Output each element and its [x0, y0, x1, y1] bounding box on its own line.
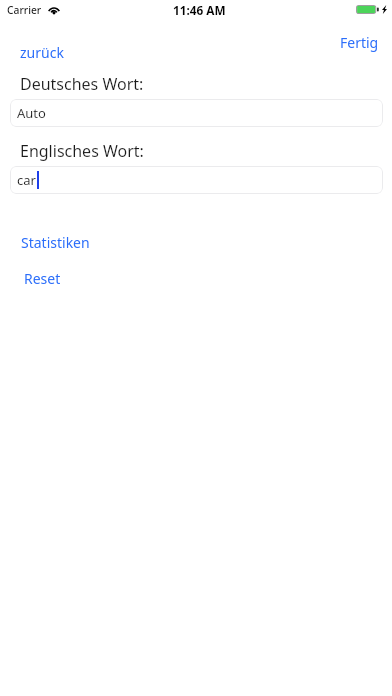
staticText: Statistiken — [21, 233, 90, 252]
other: Battery charging — [356, 5, 379, 14]
button[interactable]: Fertig — [328, 28, 391, 57]
button[interactable]: Reset — [12, 264, 73, 293]
button[interactable]: zurück — [8, 38, 76, 67]
staticText: Auto — [17, 104, 46, 122]
staticText: Reset — [24, 269, 61, 288]
button[interactable]: Statistiken — [9, 228, 102, 257]
staticText: car — [17, 171, 36, 189]
staticText: 11:46 AM — [173, 2, 226, 18]
other: Wi-Fi signal — [48, 5, 60, 14]
staticText: Deutsches Wort: — [20, 73, 144, 95]
staticText: Englisches Wort: — [20, 140, 144, 162]
staticText: Carrier — [7, 3, 42, 17]
staticText: Fertig — [340, 33, 379, 52]
staticText: zurück — [20, 43, 64, 62]
button[interactable]: Auto — [10, 99, 383, 127]
button[interactable]: car — [10, 166, 383, 194]
